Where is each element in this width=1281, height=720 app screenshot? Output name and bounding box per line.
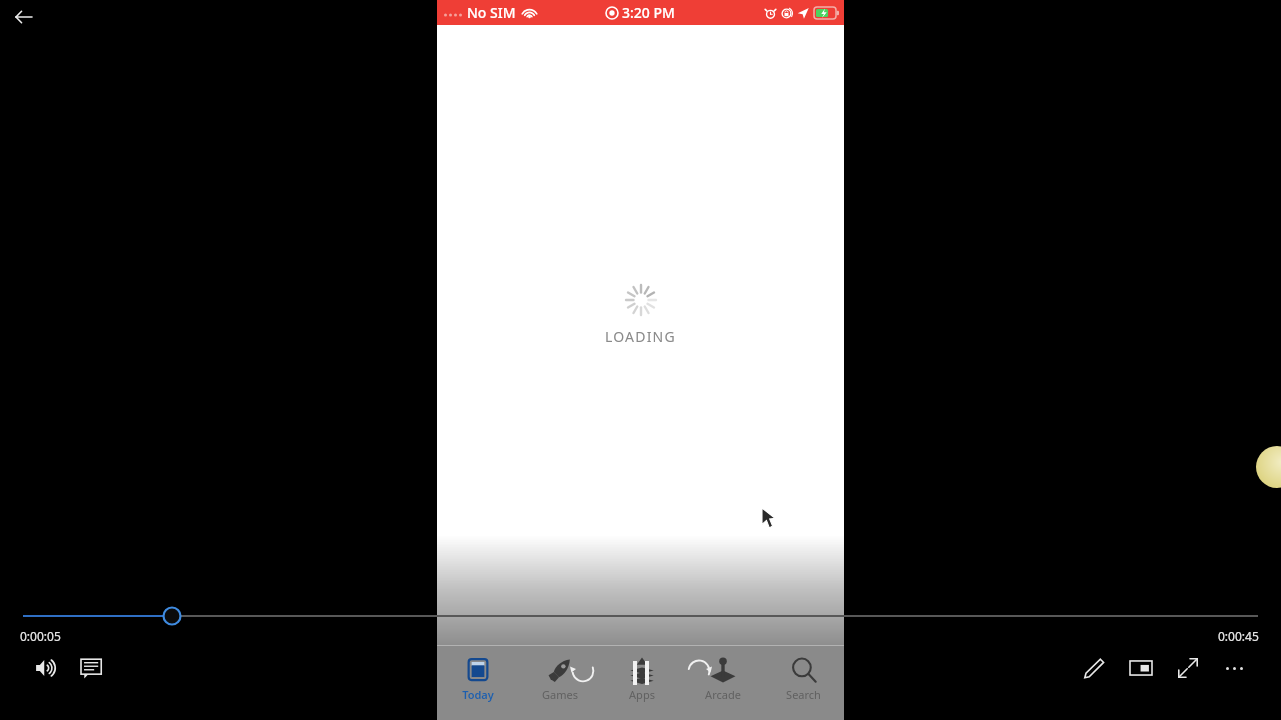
button[interactable]: Subtitles (76, 652, 108, 684)
button[interactable]: Pause (621, 653, 661, 693)
button[interactable]: Arcade (682, 653, 763, 720)
button[interactable]: Forward 30 seconds (681, 655, 717, 691)
staticText: 0:00:05 (20, 628, 61, 644)
staticText: No SIM (467, 3, 516, 22)
button[interactable]: Games (519, 653, 601, 720)
staticText: LOADING (605, 327, 676, 346)
staticText: Apps (629, 687, 655, 702)
staticText: Today (462, 687, 494, 702)
button[interactable]: Back (8, 2, 38, 32)
button[interactable]: Seek (160, 604, 184, 628)
button[interactable]: Search (763, 653, 844, 720)
button[interactable]: Annotate (1078, 652, 1110, 684)
staticText: Games (542, 687, 578, 702)
staticText: Arcade (705, 687, 741, 702)
button[interactable]: Rewind 10 seconds (565, 655, 601, 691)
button[interactable]: More options (1218, 652, 1250, 684)
staticText: Search (786, 687, 821, 702)
button[interactable]: Today (437, 653, 519, 720)
staticText: 0:00:45 (1218, 628, 1259, 644)
button[interactable]: Picture in picture (1125, 652, 1157, 684)
staticText: 3:20 PM (622, 3, 675, 22)
button[interactable]: Apps (601, 653, 682, 720)
button[interactable]: Volume (30, 652, 62, 684)
button[interactable]: Exit full screen (1172, 652, 1204, 684)
